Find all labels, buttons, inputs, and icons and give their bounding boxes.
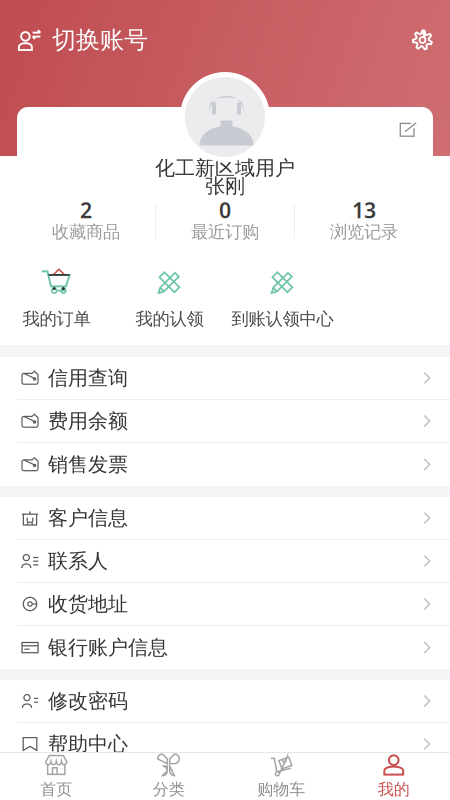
- staticText: 我的订单: [22, 308, 90, 330]
- staticText: 最近订购: [191, 221, 259, 243]
- button[interactable]: 切换账号: [0, 18, 156, 62]
- staticText: 联系人: [48, 549, 108, 573]
- button[interactable]: 分类: [112, 751, 225, 800]
- staticText: 分类: [153, 780, 185, 799]
- staticText: 到账认领中心: [231, 308, 333, 330]
- staticText: 销售发票: [48, 452, 128, 477]
- staticText: 帮助中心: [48, 732, 128, 756]
- staticText: 我的认领: [135, 308, 203, 330]
- button[interactable]: 购物车: [225, 751, 337, 800]
- staticText: 购物车: [257, 780, 305, 799]
- button[interactable]: 销售发票: [0, 443, 450, 486]
- button[interactable]: 我的认领: [113, 267, 226, 330]
- button[interactable]: 信用查询: [0, 357, 450, 400]
- button[interactable]: 费用余额: [0, 400, 450, 443]
- staticText: 修改密码: [48, 689, 128, 713]
- button[interactable]: 联系人: [0, 540, 450, 583]
- button[interactable]: Settings: [395, 18, 450, 62]
- button[interactable]: 首页: [0, 751, 112, 800]
- staticText: 收藏商品: [52, 221, 120, 243]
- staticText: 客户信息: [48, 506, 128, 530]
- staticText: 银行账户信息: [48, 635, 168, 660]
- button[interactable]: 客户信息: [0, 497, 450, 540]
- staticText: 我的: [378, 780, 410, 799]
- staticText: 张刚: [205, 174, 245, 198]
- button[interactable]: 帮助中心: [0, 723, 450, 766]
- staticText: 首页: [40, 780, 72, 799]
- button[interactable]: 我的: [337, 751, 450, 800]
- button[interactable]: 银行账户信息: [0, 626, 450, 669]
- staticText: 信用查询: [48, 366, 128, 390]
- button[interactable]: 收货地址: [0, 583, 450, 626]
- button[interactable]: Edit profile: [399, 122, 417, 138]
- staticText: 2: [80, 196, 92, 224]
- staticText: 13: [352, 196, 376, 224]
- staticText: 切换账号: [52, 25, 148, 55]
- staticText: 浏览记录: [330, 221, 398, 243]
- button[interactable]: 我的订单: [0, 267, 113, 330]
- staticText: 0: [219, 196, 231, 224]
- staticText: 收货地址: [48, 592, 128, 616]
- button[interactable]: 修改密码: [0, 680, 450, 723]
- staticText: 化工新区域用户: [155, 156, 295, 180]
- button[interactable]: 到账认领中心: [226, 267, 339, 330]
- staticText: 费用余额: [48, 409, 128, 433]
